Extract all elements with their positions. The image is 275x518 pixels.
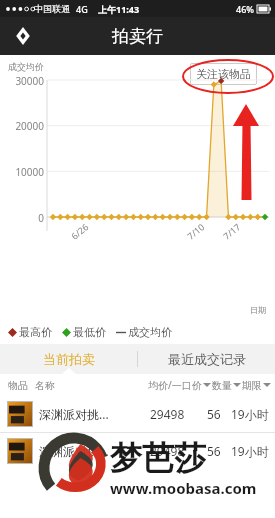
staticText: 46%	[236, 3, 254, 15]
staticText: 56	[207, 406, 221, 422]
staticText: 7/17	[220, 220, 243, 242]
staticText: 名称	[35, 379, 55, 392]
button[interactable]: 关注该物品	[190, 63, 257, 85]
staticText: 成交均价	[128, 325, 172, 339]
button[interactable]: Back	[8, 21, 38, 51]
staticText: 最低价	[73, 325, 106, 339]
staticText: 0	[2, 211, 44, 225]
staticText: 拍卖行	[112, 26, 163, 47]
staticText: 10000	[2, 165, 44, 179]
staticText: 29498	[150, 443, 185, 459]
button[interactable]: 深渊派对挑...	[0, 396, 275, 432]
staticText: 最近成交记录	[168, 351, 246, 367]
staticText: www.moobasa.com	[110, 478, 257, 498]
staticText: 56	[207, 443, 221, 459]
staticText: 20000	[2, 119, 44, 133]
staticText: 7/10	[184, 220, 207, 242]
staticText: 最高价	[19, 325, 52, 339]
staticText: 30000	[2, 74, 44, 88]
staticText: 成交均价	[8, 61, 44, 72]
staticText: 关注该物品	[196, 67, 251, 81]
staticText: 中国联通	[34, 3, 70, 14]
staticText: 梦芭莎	[110, 438, 206, 478]
staticText: 6/26	[68, 220, 91, 242]
button[interactable]: 最近成交记录	[138, 344, 275, 374]
staticText: 当前拍卖	[43, 351, 95, 367]
staticText: 日期	[250, 305, 266, 315]
staticText: 19小时	[231, 406, 275, 422]
staticText: 物品	[8, 379, 28, 392]
staticText: 4G	[76, 3, 88, 15]
staticText: 深渊派对挑...	[39, 443, 111, 459]
staticText: 19小时	[231, 443, 275, 459]
button[interactable]: 当前拍卖	[0, 344, 137, 374]
staticText: 期限	[242, 379, 262, 392]
staticText: 数量	[212, 379, 232, 392]
staticText: 均价/一口价	[148, 378, 202, 392]
staticText: 29498	[150, 406, 185, 422]
button[interactable]: 深渊派对挑...	[0, 433, 275, 469]
staticText: 深渊派对挑...	[39, 406, 111, 422]
staticText: 上午11:43	[98, 3, 140, 15]
